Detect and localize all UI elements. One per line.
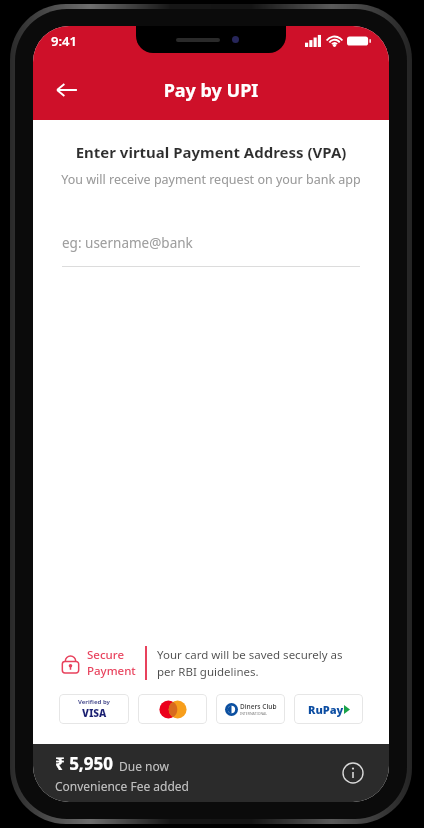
staticText: ₹ 5,950 [55, 752, 113, 775]
staticText: Payment [87, 663, 136, 679]
staticText: VISA [82, 706, 107, 720]
staticText: Pay by UPI [87, 78, 335, 103]
button[interactable]: ₹ 5,950 [33, 744, 389, 802]
staticText: RuPay [308, 702, 344, 717]
staticText: INTERNATIONAL [240, 711, 268, 716]
staticText: You will receive payment request on your… [33, 171, 389, 188]
staticText: 9:41 [51, 32, 77, 50]
button[interactable]: eg: username@bank [62, 234, 360, 267]
staticText: Enter virtual Payment Address (VPA) [33, 142, 389, 162]
button[interactable]: Back [47, 70, 87, 110]
staticText: Your card will be saved securely as per … [157, 647, 361, 679]
staticText: eg: username@bank [62, 234, 193, 252]
staticText: Due now [119, 758, 169, 774]
staticText: Secure [87, 647, 125, 663]
button[interactable]: Fee details [337, 757, 369, 789]
staticText: Convenience Fee added [55, 778, 189, 794]
staticText: Verified by [78, 698, 110, 706]
staticText: Diners Club [240, 702, 277, 711]
